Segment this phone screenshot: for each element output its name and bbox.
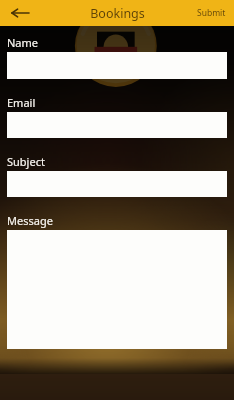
staticText: Bookings <box>90 5 145 22</box>
button[interactable]: Submit <box>189 0 234 26</box>
staticText: Email <box>7 95 36 110</box>
button[interactable]: Back <box>0 0 40 26</box>
staticText: Name <box>7 35 39 50</box>
staticText: Message <box>7 213 53 228</box>
staticText: Submit <box>197 7 226 19</box>
staticText: Subject <box>7 154 45 169</box>
